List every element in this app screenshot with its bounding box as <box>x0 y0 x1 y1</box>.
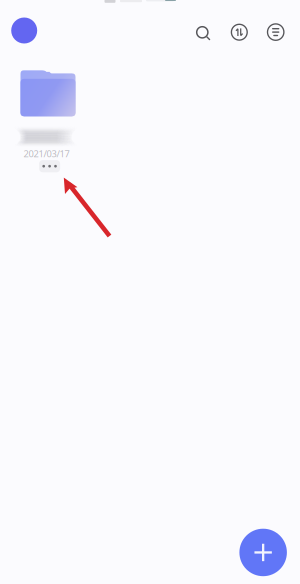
button[interactable]: View options <box>261 17 291 47</box>
button[interactable]: Profile <box>7 13 41 47</box>
staticText: 2021/03/17 <box>23 147 69 160</box>
button[interactable]: Add <box>239 529 287 576</box>
button[interactable]: Sort <box>224 17 254 47</box>
button[interactable]: More options <box>39 160 60 172</box>
button[interactable]: Search <box>189 19 219 49</box>
